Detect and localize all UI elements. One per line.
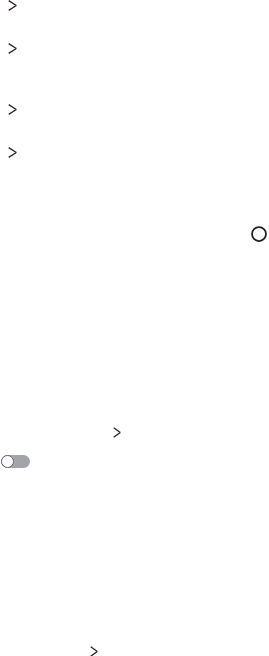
button[interactable]: Toggle setting <box>1 455 30 468</box>
button[interactable]: Select option <box>251 226 267 242</box>
button[interactable]: Expand section <box>8 0 17 11</box>
button[interactable]: Expand section <box>8 104 17 115</box>
button[interactable]: Expand section <box>8 43 17 54</box>
button[interactable]: More <box>90 646 98 656</box>
button[interactable]: More <box>113 427 121 438</box>
button[interactable]: Expand section <box>8 147 17 158</box>
